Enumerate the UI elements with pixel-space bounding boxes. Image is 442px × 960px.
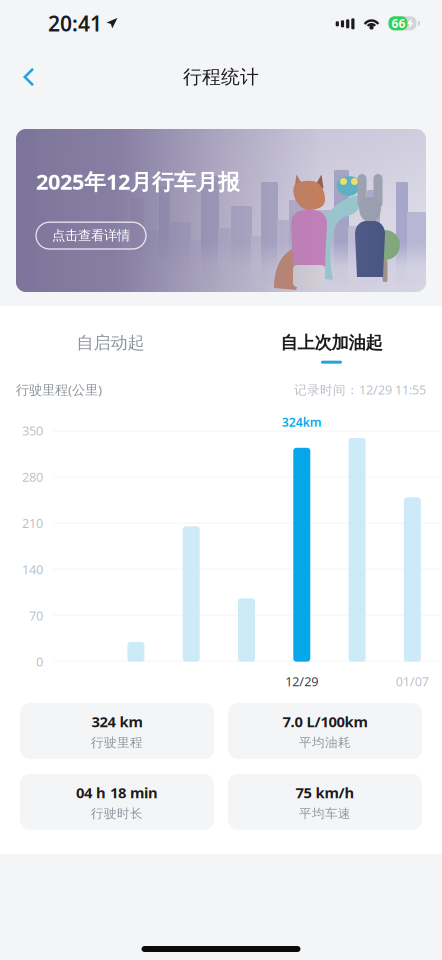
staticText: 自上次加油起 xyxy=(280,332,382,354)
staticText: 平均油耗 xyxy=(299,735,351,750)
staticText: 行驶时长 xyxy=(91,806,143,821)
staticText: 70 xyxy=(29,607,43,624)
button[interactable]: 自上次加油起 xyxy=(221,325,442,371)
button[interactable]: 75 km/h xyxy=(228,774,422,830)
staticText: 7.0 L/100km xyxy=(282,711,367,732)
staticText: 280 xyxy=(22,468,43,485)
staticText: 0 xyxy=(36,653,43,670)
staticText: 324 km xyxy=(91,711,142,732)
staticText: 75 km/h xyxy=(295,782,354,803)
button[interactable]: 自启动起 xyxy=(0,325,221,371)
staticText: 记录时间：12/29 11:55 xyxy=(294,381,426,398)
staticText: 324km xyxy=(282,414,322,430)
staticText: 66 xyxy=(391,15,405,31)
staticText: 行驶里程 xyxy=(91,735,143,750)
staticText: 2025年12月行车月报 xyxy=(36,167,240,196)
staticText: 平均车速 xyxy=(299,806,351,821)
button[interactable]: 7.0 L/100km xyxy=(228,703,422,759)
staticText: 行程统计 xyxy=(183,65,259,89)
staticText: 20:41 xyxy=(48,9,102,38)
staticText: 点击查看详情 xyxy=(52,227,130,244)
staticText: 140 xyxy=(22,560,43,578)
button[interactable]: 返回 xyxy=(11,56,47,97)
staticText: 04 h 18 min xyxy=(76,782,158,803)
staticText: 01/07 xyxy=(396,673,429,690)
button[interactable]: 324 km xyxy=(20,703,214,759)
staticText: 12/29 xyxy=(285,673,318,690)
button[interactable]: 2025年12月行车月报 xyxy=(16,129,426,292)
staticText: 350 xyxy=(22,422,43,439)
button[interactable]: 04 h 18 min xyxy=(20,774,214,830)
staticText: 自启动起 xyxy=(76,332,144,354)
staticText: 210 xyxy=(22,514,43,532)
staticText: 行驶里程(公里) xyxy=(16,381,102,399)
